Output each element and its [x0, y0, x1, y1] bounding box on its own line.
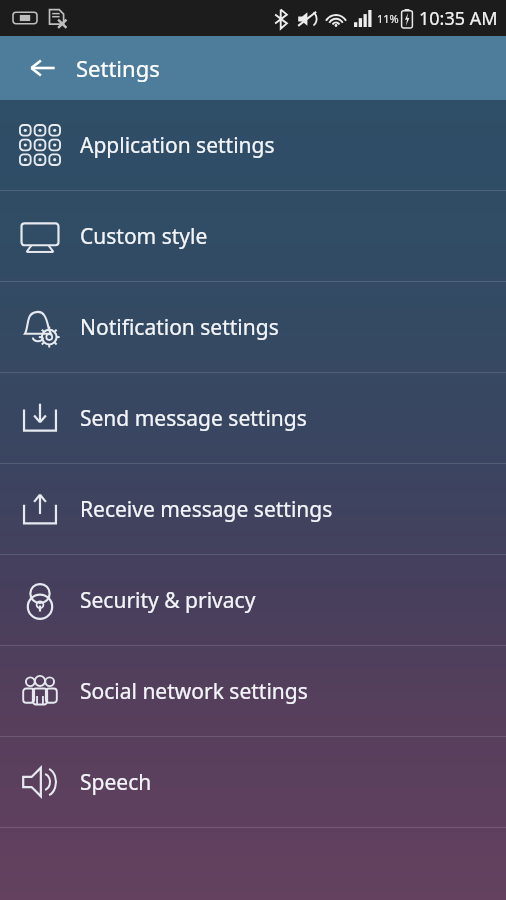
- staticText: Send message settings: [80, 404, 307, 433]
- staticText: 11%: [377, 11, 399, 26]
- button[interactable]: Receive message settings: [0, 464, 506, 554]
- staticText: 10:35 AM: [419, 6, 498, 31]
- staticText: Security & privacy: [80, 586, 256, 615]
- button[interactable]: Send message settings: [0, 373, 506, 463]
- staticText: Social network settings: [80, 677, 308, 706]
- staticText: Settings: [76, 53, 160, 83]
- staticText: Receive message settings: [80, 495, 333, 524]
- staticText: Application settings: [80, 131, 275, 160]
- button[interactable]: Application settings: [0, 100, 506, 190]
- staticText: Notification settings: [80, 313, 279, 342]
- button[interactable]: Security & privacy: [0, 555, 506, 645]
- button[interactable]: Social network settings: [0, 646, 506, 736]
- staticText: Custom style: [80, 222, 208, 251]
- button[interactable]: Custom style: [0, 191, 506, 281]
- button[interactable]: Speech: [0, 737, 506, 827]
- staticText: Speech: [80, 768, 152, 797]
- button[interactable]: Back: [22, 47, 64, 89]
- button[interactable]: Notification settings: [0, 282, 506, 372]
